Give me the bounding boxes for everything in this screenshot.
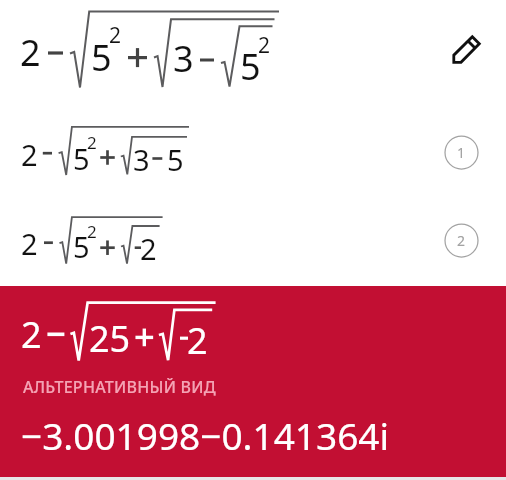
staticText: 2 <box>21 135 38 174</box>
staticText: 5 <box>73 227 90 266</box>
staticText: 2 <box>457 231 466 250</box>
button[interactable]: Edit <box>446 28 486 68</box>
staticText: 1 <box>457 143 466 162</box>
button[interactable]: 2 <box>0 110 506 198</box>
button[interactable]: Step 1 <box>445 136 478 169</box>
staticText: 2 <box>87 131 97 154</box>
staticText: 2 <box>109 21 122 50</box>
staticText: 2 <box>187 316 208 365</box>
button[interactable]: 2 <box>0 198 506 286</box>
staticText: 2 <box>258 31 271 60</box>
staticText: 3 <box>133 140 150 179</box>
staticText: −3.001998−0.141364i <box>21 410 390 460</box>
staticText: АЛЬТЕРНАТИВНЫЙ ВИД <box>23 376 216 398</box>
staticText: 5 <box>73 139 90 178</box>
button[interactable]: 2 <box>0 0 506 110</box>
staticText: 25 <box>89 314 131 363</box>
staticText: 2 <box>21 310 42 359</box>
staticText: 2 <box>20 28 41 77</box>
staticText: 3 <box>173 34 194 83</box>
staticText: 5 <box>240 42 261 91</box>
button[interactable]: Step 2 <box>445 224 478 257</box>
staticText: 2 <box>21 224 38 263</box>
staticText: 5 <box>91 33 112 82</box>
button[interactable]: 2 <box>0 286 506 477</box>
staticText: 2 <box>140 229 157 268</box>
staticText: 5 <box>167 140 184 179</box>
staticText: 2 <box>87 220 97 243</box>
